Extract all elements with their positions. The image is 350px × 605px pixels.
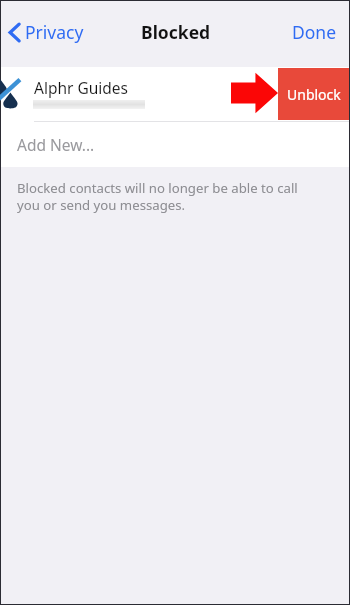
staticText: Blocked contacts will no longer be able … bbox=[17, 179, 323, 214]
button[interactable]: Unblock bbox=[278, 68, 349, 120]
staticText: Add New... bbox=[17, 134, 95, 155]
button[interactable]: Alphr Guides bbox=[1, 67, 349, 121]
staticText: Privacy bbox=[25, 20, 84, 44]
button[interactable]: Add New... bbox=[1, 122, 349, 167]
button[interactable]: Privacy bbox=[1, 16, 94, 48]
staticText: Blocked bbox=[141, 20, 211, 44]
staticText: Unblock bbox=[287, 85, 341, 104]
staticText: Alphr Guides bbox=[34, 77, 129, 98]
other: Arrow pointing to Unblock bbox=[231, 72, 278, 114]
button[interactable]: Done bbox=[282, 16, 349, 48]
staticText: Done bbox=[292, 20, 337, 44]
